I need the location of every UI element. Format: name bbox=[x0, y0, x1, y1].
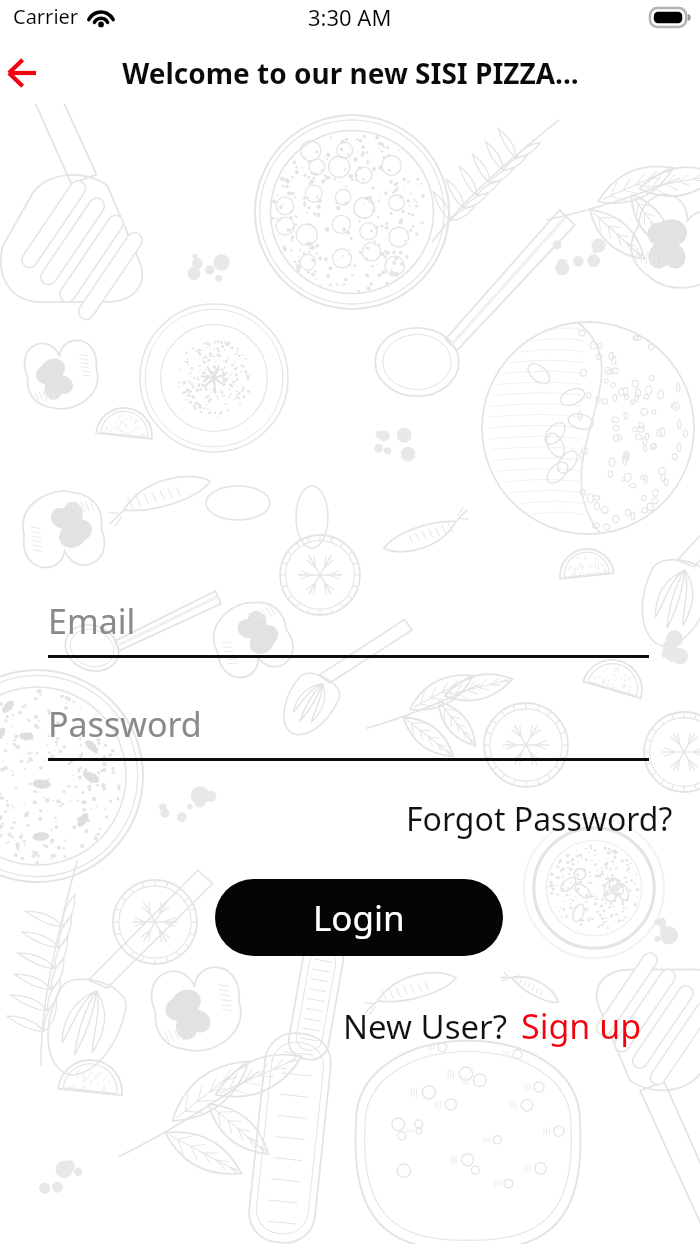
staticText: New User? bbox=[343, 1004, 508, 1049]
staticText: Forgot Password? bbox=[406, 797, 673, 841]
staticText: Email bbox=[48, 598, 136, 644]
button[interactable]: Password bbox=[0, 701, 700, 761]
button[interactable]: Back bbox=[0, 46, 48, 100]
button[interactable]: Forgot Password? bbox=[395, 792, 684, 846]
staticText: Sign up bbox=[521, 1003, 642, 1049]
button[interactable]: Login bbox=[215, 879, 503, 956]
button[interactable]: Sign up bbox=[508, 998, 646, 1054]
staticText: Password bbox=[48, 701, 202, 747]
button[interactable]: Email bbox=[0, 598, 700, 658]
staticText: Login bbox=[313, 894, 405, 942]
staticText: 3:30 AM bbox=[308, 2, 392, 32]
staticText: Carrier bbox=[13, 3, 79, 30]
staticText: Welcome to our new SISI PIZZA... bbox=[122, 54, 579, 92]
